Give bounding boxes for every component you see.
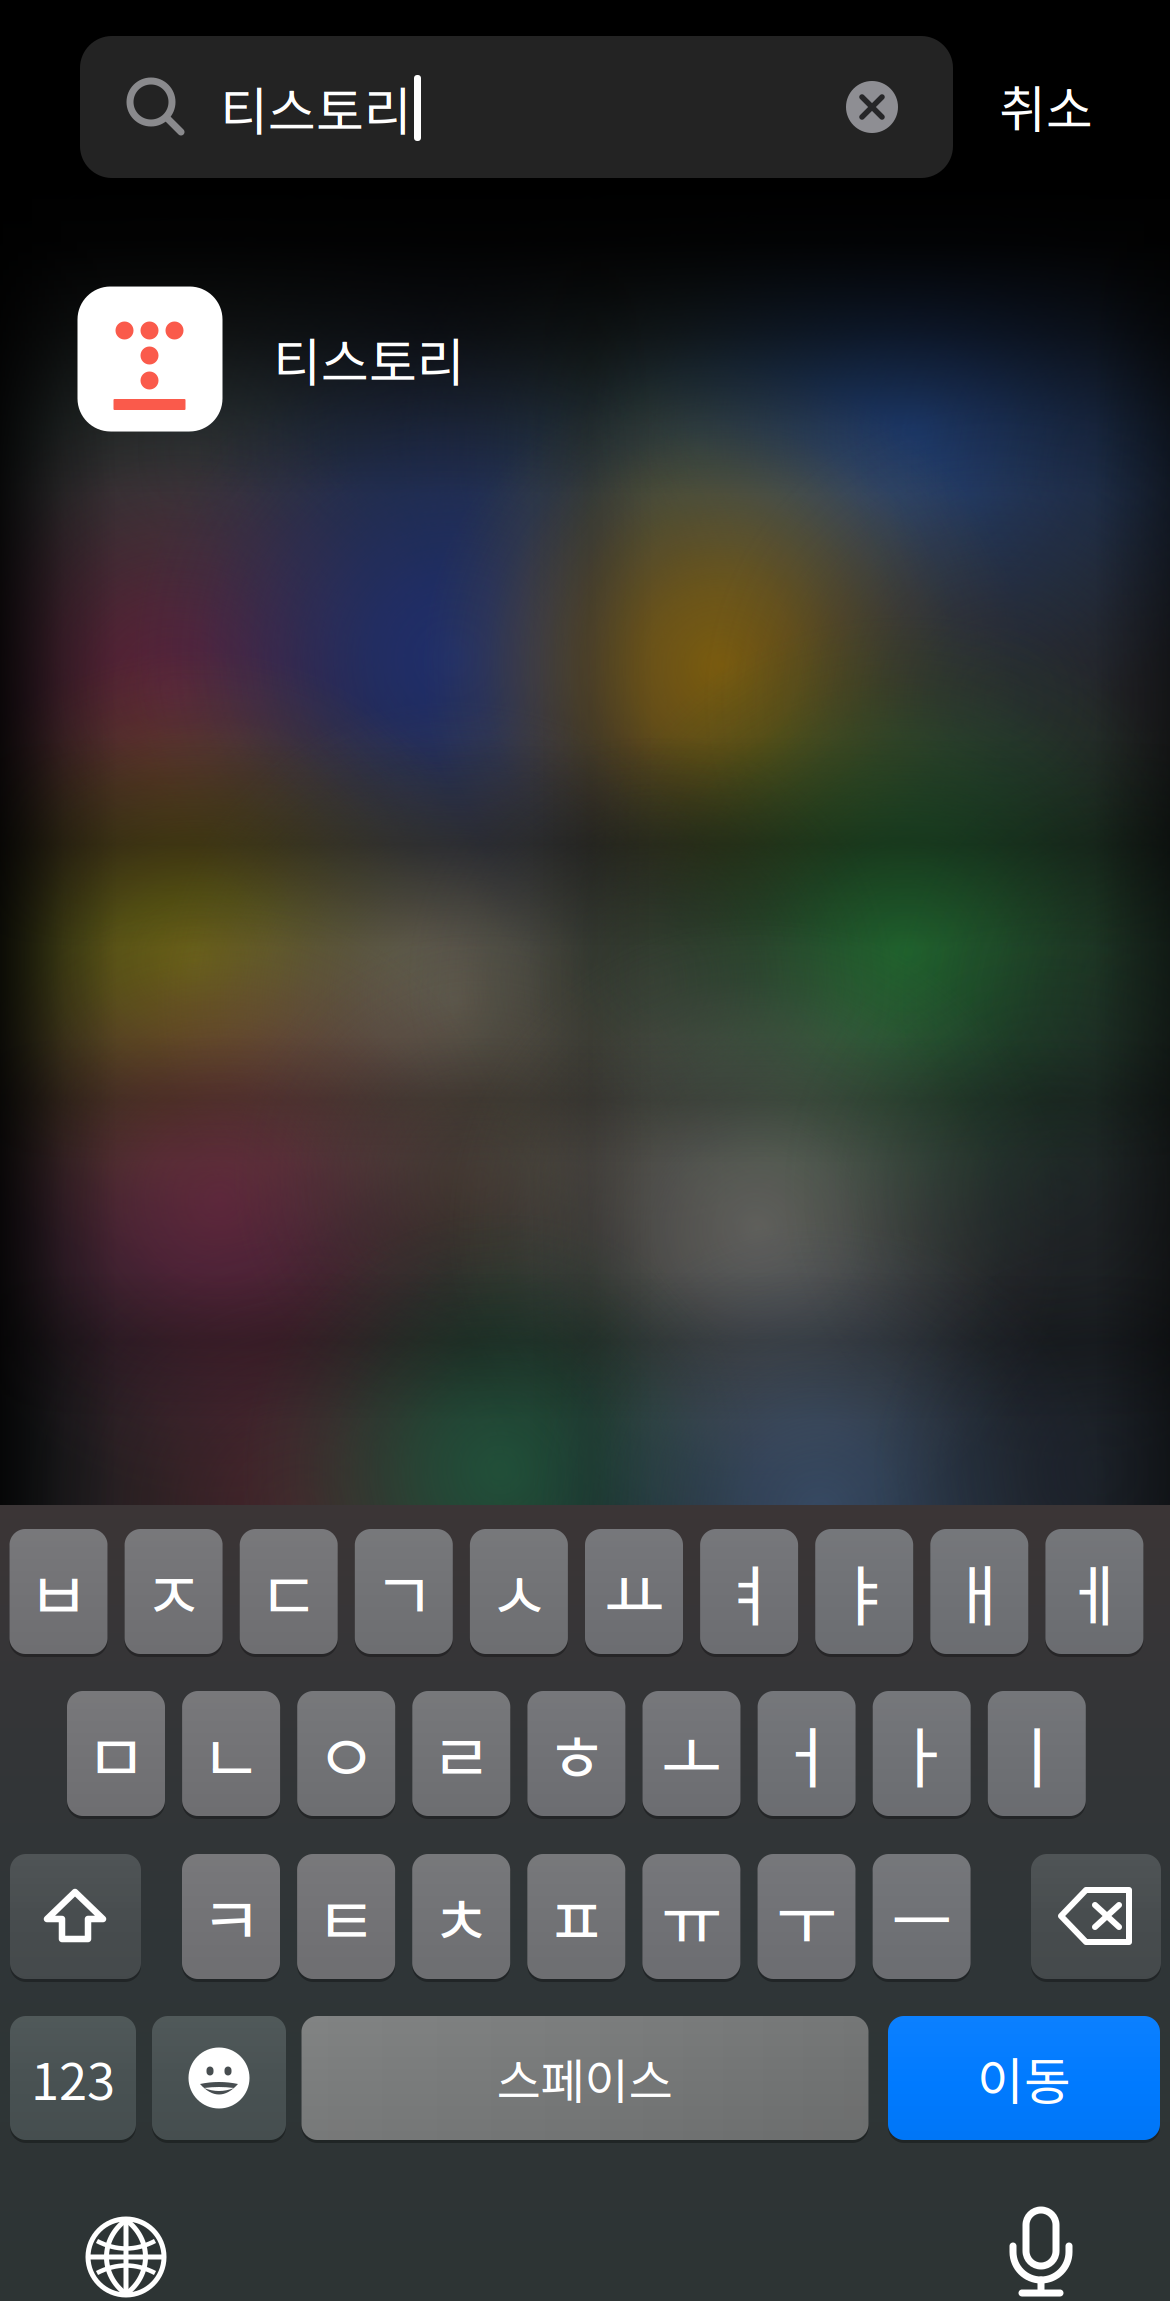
staticText: ㅜ [776, 1868, 837, 1965]
button[interactable]: ㅠ [642, 1854, 740, 1979]
staticText: ㅔ [1064, 1543, 1125, 1640]
button[interactable]: ㅗ [642, 1691, 740, 1816]
button[interactable]: ㅏ [873, 1691, 971, 1816]
button[interactable]: Clear text [827, 52, 917, 162]
button[interactable]: ㅐ [930, 1529, 1028, 1654]
staticText: 123 [31, 2041, 115, 2115]
button[interactable]: ㄷ [240, 1529, 338, 1654]
button[interactable]: 이동 [888, 2016, 1160, 2140]
button[interactable]: ㅑ [815, 1529, 913, 1654]
button[interactable]: ㅕ [700, 1529, 798, 1654]
button[interactable]: Delete [1031, 1854, 1161, 1979]
button[interactable]: Dictation [981, 2194, 1101, 2301]
staticText: ㅡ [891, 1868, 952, 1965]
staticText: ㅂ [28, 1543, 89, 1640]
button[interactable]: 티스토리 [0, 266, 1170, 452]
staticText: ㅛ [603, 1543, 664, 1640]
staticText: ㅏ [891, 1705, 952, 1802]
button[interactable]: ㅌ [297, 1854, 395, 1979]
button[interactable]: Shift [10, 1854, 141, 1979]
button[interactable]: ㅅ [470, 1529, 568, 1654]
staticText: ㅁ [85, 1705, 146, 1802]
staticText: ㅓ [776, 1705, 837, 1802]
button[interactable]: ㅜ [757, 1854, 855, 1979]
button[interactable]: ㅔ [1045, 1529, 1143, 1654]
staticText: ㄱ [373, 1543, 434, 1640]
button[interactable]: ㅛ [585, 1529, 683, 1654]
staticText: 이동 [977, 2041, 1071, 2115]
button[interactable]: ㄴ [182, 1691, 280, 1816]
staticText: ㅎ [546, 1705, 607, 1802]
staticText: ㅇ [316, 1705, 377, 1802]
staticText: ㅣ [1006, 1705, 1067, 1802]
button[interactable]: 취소 [976, 46, 1116, 166]
staticText: ㄹ [431, 1705, 492, 1802]
button[interactable]: Next keyboard [66, 2197, 186, 2301]
staticText: ㅈ [143, 1543, 204, 1640]
staticText: 티스토리 [220, 70, 412, 146]
staticText: ㅕ [719, 1543, 780, 1640]
staticText: 취소 [999, 69, 1093, 143]
staticText: ㄷ [258, 1543, 319, 1640]
button[interactable]: ㅓ [758, 1691, 856, 1816]
staticText: ㅊ [431, 1868, 492, 1965]
staticText: ㅅ [488, 1543, 549, 1640]
button[interactable]: 스페이스 [301, 2016, 868, 2140]
button[interactable]: Emoji [152, 2016, 286, 2140]
button[interactable]: ㅍ [527, 1854, 625, 1979]
button[interactable]: ㄹ [412, 1691, 510, 1816]
button[interactable]: ㅣ [988, 1691, 1086, 1816]
staticText: ㅗ [661, 1705, 722, 1802]
staticText: ㅋ [200, 1868, 261, 1965]
staticText: ㅑ [834, 1543, 895, 1640]
staticText: ㅌ [316, 1868, 377, 1965]
button[interactable]: ㅊ [412, 1854, 510, 1979]
button[interactable]: ㅎ [527, 1691, 625, 1816]
button[interactable]: ㅇ [297, 1691, 395, 1816]
button[interactable]: ㅡ [873, 1854, 971, 1979]
button[interactable]: ㄱ [355, 1529, 453, 1654]
staticText: 스페이스 [496, 2043, 672, 2113]
button[interactable]: ㅈ [125, 1529, 223, 1654]
staticText: ㅠ [661, 1868, 722, 1965]
staticText: 티스토리 [273, 321, 465, 397]
button[interactable]: ㅂ [9, 1529, 107, 1654]
button[interactable]: 123 [10, 2016, 136, 2140]
staticText: ㄴ [201, 1705, 262, 1802]
staticText: ㅍ [546, 1868, 607, 1965]
staticText: ㅐ [949, 1543, 1010, 1640]
button[interactable]: ㅁ [67, 1691, 165, 1816]
button[interactable]: ㅋ [182, 1854, 280, 1979]
